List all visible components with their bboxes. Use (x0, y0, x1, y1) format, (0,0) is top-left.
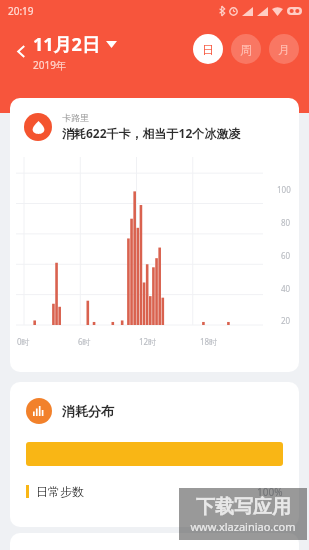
staticText: 100 (277, 184, 291, 195)
staticText: 20:19 (8, 4, 34, 18)
button[interactable]: Back (8, 38, 34, 64)
staticText: 消耗分布 (62, 403, 114, 419)
button[interactable]: 卡路里 (10, 98, 299, 372)
staticText: 日常步数 (36, 484, 84, 499)
staticText: 100% (257, 485, 283, 499)
staticText: 消耗622千卡，相当于12个冰激凌 (62, 125, 241, 141)
button[interactable]: 11月2日 (33, 32, 123, 74)
staticText: 60 (281, 250, 291, 261)
button[interactable]: 日 (193, 34, 223, 64)
button[interactable]: 消耗分布 (10, 382, 299, 527)
staticText: 40 (281, 283, 291, 294)
staticText: 月 (278, 42, 290, 57)
staticText: www.xlazainiao.com (190, 519, 296, 534)
staticText: 下载写应用 (196, 495, 291, 519)
staticText: 周 (240, 42, 252, 57)
staticText: 80 (281, 217, 291, 228)
button[interactable] (10, 533, 299, 550)
staticText: 日 (202, 42, 214, 57)
staticText: 卡路里 (62, 112, 89, 123)
staticText: 6时 (78, 336, 91, 347)
staticText: 2019年 (33, 58, 66, 72)
staticText: 11月2日 (33, 32, 100, 57)
staticText: 0时 (17, 336, 30, 347)
staticText: 12时 (139, 336, 157, 347)
staticText: 18时 (200, 336, 218, 347)
staticText: 20 (281, 315, 291, 326)
button[interactable]: 月 (269, 34, 299, 64)
button[interactable]: 周 (231, 34, 261, 64)
